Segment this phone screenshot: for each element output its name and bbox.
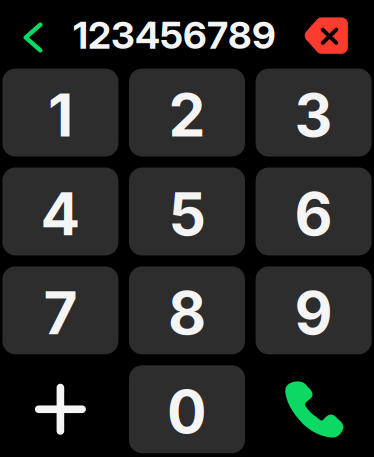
- button[interactable]: 3: [256, 69, 372, 156]
- button[interactable]: 9: [256, 266, 372, 354]
- button[interactable]: 6: [256, 167, 372, 255]
- button[interactable]: Delete: [300, 9, 354, 63]
- staticText: 123456789: [73, 12, 276, 58]
- staticText: 2: [168, 80, 205, 151]
- button[interactable]: Back: [7, 10, 59, 64]
- button[interactable]: 0: [129, 365, 245, 453]
- staticText: 4: [40, 178, 80, 249]
- staticText: 1: [48, 80, 73, 151]
- button[interactable]: 8: [129, 266, 245, 354]
- staticText: 7: [43, 277, 77, 348]
- staticText: 6: [295, 178, 333, 249]
- staticText: 0: [167, 376, 207, 447]
- button[interactable]: 4: [2, 167, 118, 255]
- staticText: 3: [295, 80, 333, 151]
- staticText: 9: [295, 277, 333, 348]
- button[interactable]: Plus: [2, 365, 118, 453]
- button[interactable]: 1: [2, 69, 118, 156]
- button[interactable]: Call: [256, 365, 372, 453]
- staticText: 5: [168, 178, 205, 249]
- staticText: 8: [168, 277, 206, 348]
- button[interactable]: 7: [2, 266, 118, 354]
- button[interactable]: 5: [129, 167, 245, 255]
- button[interactable]: 2: [129, 69, 245, 156]
